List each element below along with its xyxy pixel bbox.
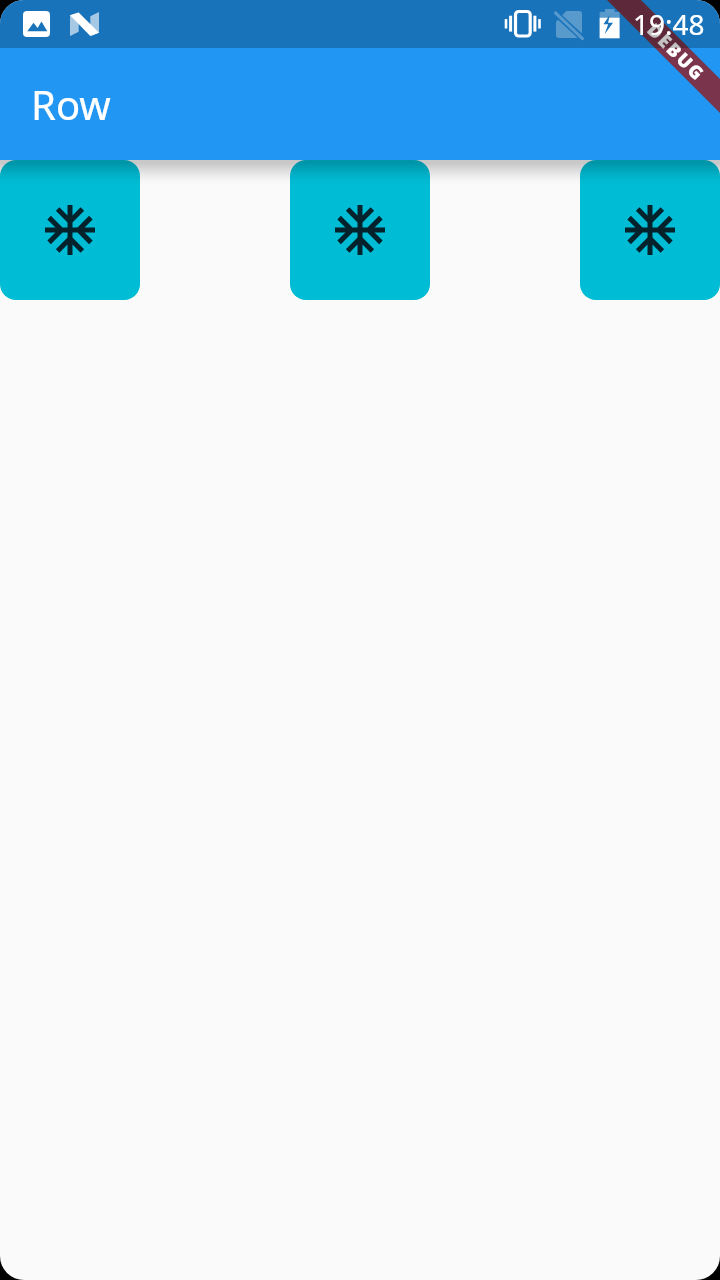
staticText: Row (31, 77, 111, 131)
button[interactable]: Snowflake (0, 160, 140, 300)
staticText: DEBUG (642, 18, 711, 87)
button[interactable]: Snowflake (580, 160, 720, 300)
button[interactable]: Snowflake (290, 160, 430, 300)
staticText: 19:48 (633, 5, 705, 43)
